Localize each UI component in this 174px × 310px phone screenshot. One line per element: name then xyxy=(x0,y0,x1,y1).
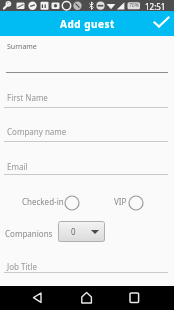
staticText: 0 xyxy=(71,226,76,237)
button[interactable] xyxy=(122,286,146,310)
staticText: Checked-in xyxy=(22,196,64,207)
button[interactable] xyxy=(0,253,174,274)
button[interactable] xyxy=(0,50,174,74)
staticText: 12:51 xyxy=(145,1,166,12)
staticText: Job Title xyxy=(7,261,37,272)
button[interactable] xyxy=(149,11,174,36)
staticText: First Name xyxy=(7,92,48,103)
button[interactable]: 0 xyxy=(58,221,105,242)
staticText: Email xyxy=(7,161,28,172)
button[interactable] xyxy=(0,155,174,176)
staticText: Surname xyxy=(7,42,37,52)
button[interactable] xyxy=(0,88,174,109)
staticText: 70% xyxy=(129,2,139,9)
button[interactable] xyxy=(112,193,146,213)
staticText: Add guest xyxy=(60,17,115,31)
staticText: VIP xyxy=(114,196,127,207)
staticText: Companions xyxy=(5,228,53,239)
button[interactable] xyxy=(20,193,82,213)
staticText: Company name xyxy=(7,126,67,137)
button[interactable] xyxy=(0,122,174,143)
button[interactable] xyxy=(75,286,99,310)
button[interactable] xyxy=(25,286,49,310)
